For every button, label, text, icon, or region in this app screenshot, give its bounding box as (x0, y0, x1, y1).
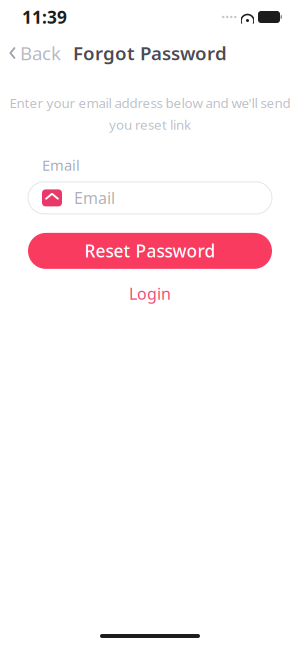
staticText: Back (20, 41, 61, 65)
staticText: Reset Password (84, 239, 215, 262)
staticText: 11:39 (22, 5, 67, 28)
staticText: Login (129, 283, 171, 304)
staticText: Forgot Password (73, 41, 227, 65)
button[interactable]: Reset Password (28, 233, 272, 269)
staticText: Email (74, 187, 115, 208)
button[interactable]: Login (115, 277, 185, 310)
staticText: Email (42, 155, 80, 175)
button[interactable]: Back (0, 35, 61, 71)
staticText: Enter your email address below and we'll… (9, 94, 290, 112)
staticText: you reset link (109, 116, 191, 133)
